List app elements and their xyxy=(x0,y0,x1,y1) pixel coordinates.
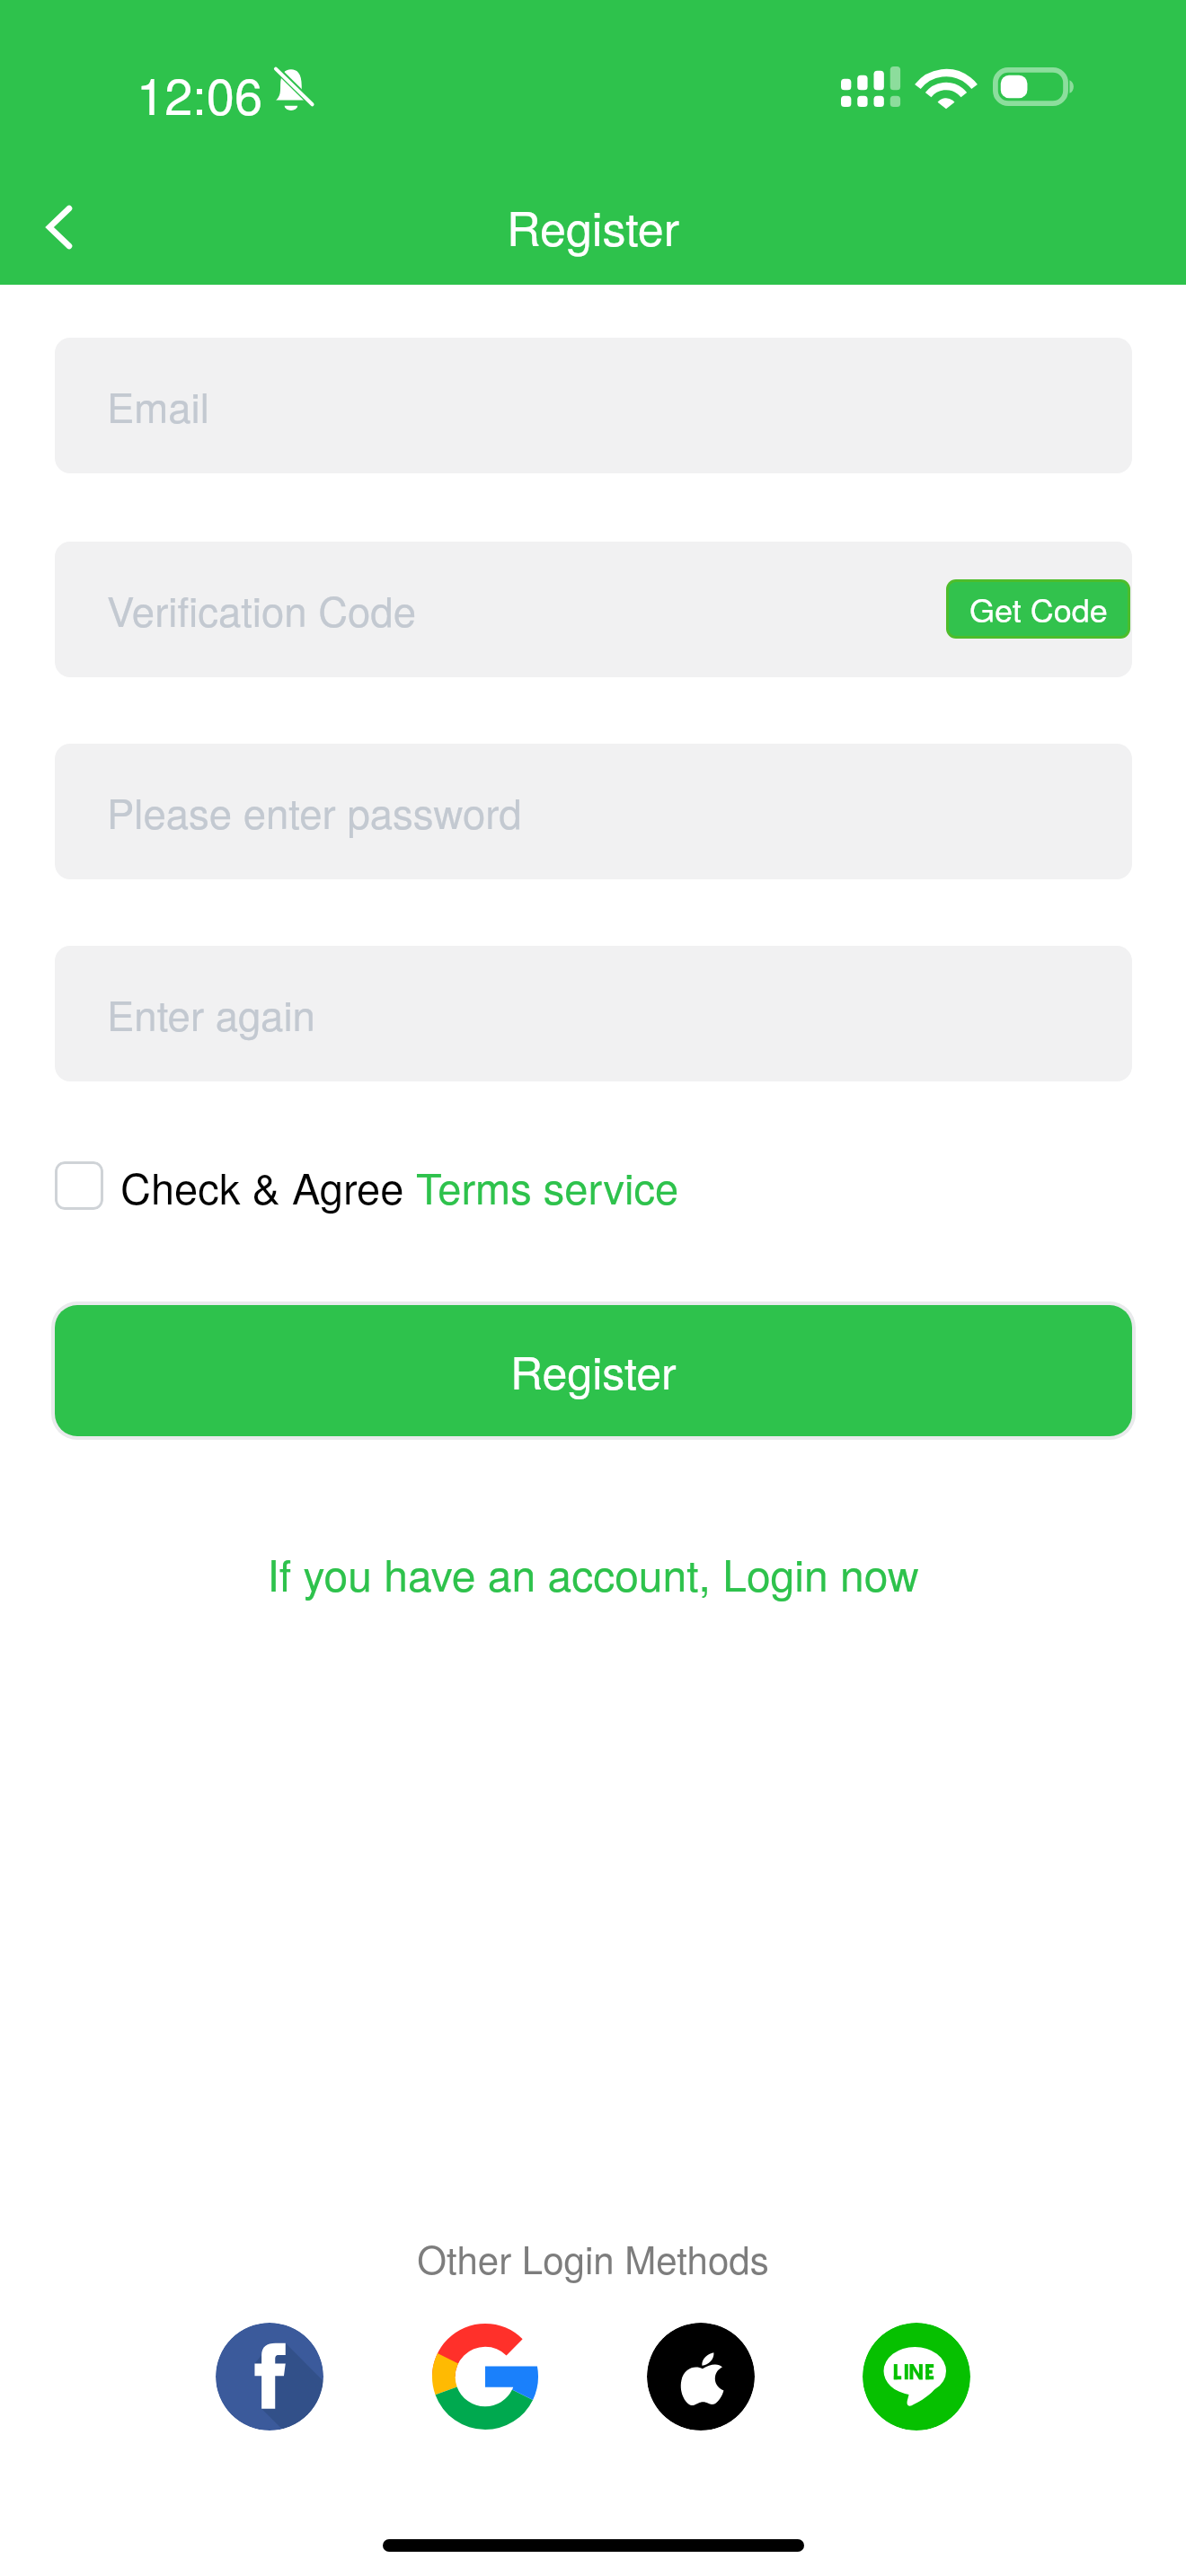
button[interactable]: Register xyxy=(55,1305,1132,1436)
button[interactable]: Back xyxy=(11,181,104,274)
staticText: Other Login Methods xyxy=(0,2231,1186,2285)
button[interactable]: Enter again xyxy=(55,946,1132,1081)
staticText: Register xyxy=(510,1338,677,1403)
button[interactable]: Sign in with Facebook xyxy=(216,2323,323,2430)
staticText: Enter again xyxy=(107,984,315,1043)
staticText: Get Code xyxy=(969,586,1108,632)
staticText: Check & Agree xyxy=(120,1156,416,1216)
staticText: Terms service xyxy=(416,1156,679,1216)
button[interactable]: Sign in with Line xyxy=(863,2323,970,2430)
staticText: Verification Code xyxy=(107,580,416,639)
staticText: Register xyxy=(507,192,680,259)
button[interactable]: Email xyxy=(55,338,1132,473)
button[interactable]: Check & Agree xyxy=(55,1150,679,1222)
staticText: Email xyxy=(107,376,209,435)
button[interactable]: If you have an account, Login now xyxy=(0,1542,1186,1604)
button[interactable]: Verification Code xyxy=(55,542,1132,677)
button[interactable]: Get Code xyxy=(949,582,1128,636)
staticText: 12:06 xyxy=(137,57,263,129)
button[interactable]: Sign in with Apple xyxy=(647,2323,755,2430)
staticText: Please enter password xyxy=(107,782,522,841)
button[interactable]: Sign in with Google xyxy=(431,2323,539,2430)
button[interactable]: Please enter password xyxy=(55,744,1132,879)
